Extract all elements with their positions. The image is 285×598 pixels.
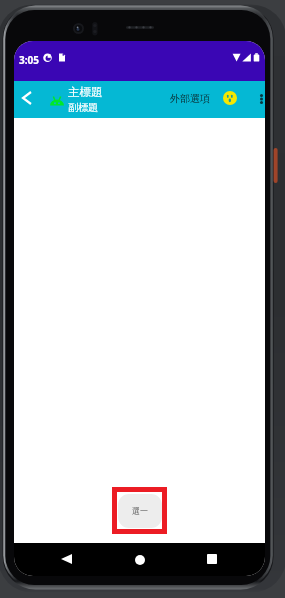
staticText: 3:05 (19, 53, 39, 67)
staticText: 主標題 (68, 85, 103, 99)
button[interactable]: Back (51, 544, 82, 575)
staticText: 副標題 (68, 101, 98, 114)
button[interactable]: Recent apps (197, 544, 228, 575)
button[interactable]: 選一 (117, 492, 162, 529)
button[interactable]: More options (252, 87, 265, 112)
button[interactable]: Back (17, 81, 43, 118)
button[interactable]: Home (124, 544, 155, 575)
staticText: 外部選項 (170, 92, 210, 105)
staticText: 選一 (132, 506, 148, 516)
button[interactable]: Emoji (219, 89, 240, 110)
button[interactable]: 外部選項 (170, 92, 210, 105)
